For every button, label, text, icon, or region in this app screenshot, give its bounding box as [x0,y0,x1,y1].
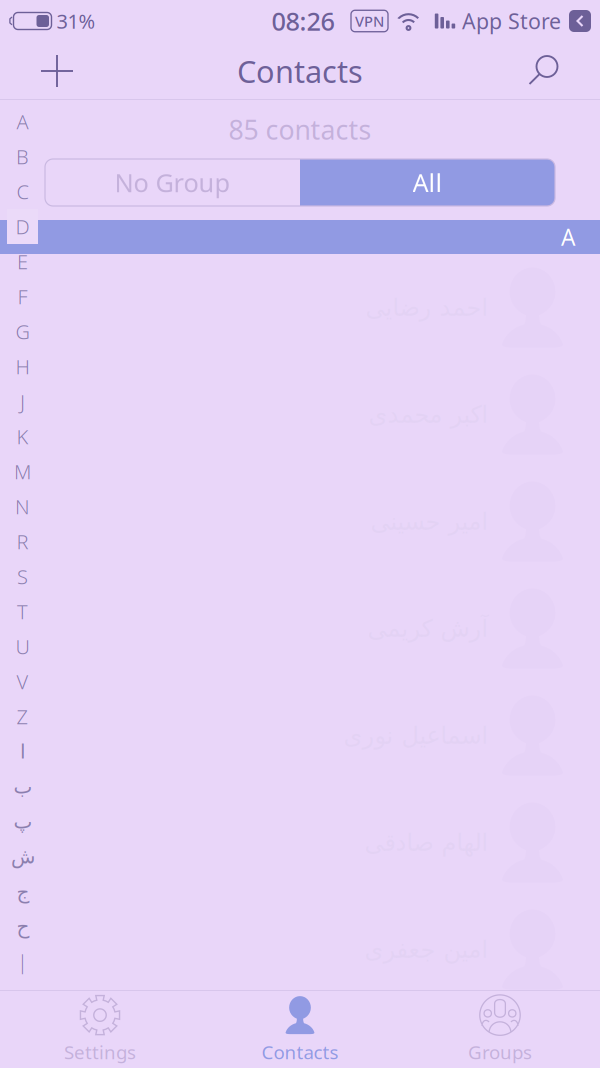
staticText: R [16,528,28,555]
staticText: ا [19,740,25,763]
staticText: App Store [462,7,561,35]
staticText: F [17,283,27,310]
staticText: 31% [56,8,95,34]
staticText: D [15,213,29,240]
button[interactable]: احمد رضایی [0,254,600,361]
staticText: B [16,143,29,170]
staticText: ج [16,880,29,903]
button[interactable]: Alphabet index [7,104,38,979]
button[interactable]: امیر حسینی [0,468,600,575]
staticText: 08:26 [271,4,334,38]
staticText: H [15,353,29,380]
staticText: K [16,423,28,450]
staticText: ش [10,845,34,868]
button[interactable]: No Group [45,159,300,206]
staticText: N [15,493,30,520]
staticText: M [14,458,31,485]
staticText: J [20,388,25,415]
staticText: A [561,222,575,252]
button[interactable]: اکبر محمدی [0,361,600,468]
staticText: A [16,108,28,135]
button[interactable]: Contacts [200,990,400,1068]
staticText: ح [16,915,29,938]
staticText: All [412,166,442,199]
staticText: Settings [64,1040,136,1064]
staticText: | [17,948,28,975]
staticText: S [17,563,28,590]
button[interactable]: Groups [400,990,600,1068]
staticText: ب [13,775,32,798]
staticText: Contacts [237,51,363,91]
staticText: T [17,598,28,625]
button[interactable]: امین جعفری [0,896,600,1003]
staticText: C [16,178,28,205]
button[interactable]: Add contact [27,42,87,100]
staticText: V [16,668,28,695]
button[interactable]: آرش کریمی [0,575,600,682]
staticText: U [15,633,29,660]
staticText: No Group [114,166,230,199]
staticText: Groups [468,1040,532,1064]
button[interactable]: اسماعیل نوری [0,682,600,789]
staticText: 85 contacts [228,112,371,147]
staticText: G [15,318,29,345]
button[interactable]: الهام صادقی [0,789,600,896]
staticText: E [17,248,28,275]
staticText: Contacts [261,1040,338,1064]
button[interactable]: Settings [0,990,200,1068]
staticText: پ [13,810,32,833]
button[interactable]: All [300,159,555,206]
button[interactable]: Search [513,42,573,100]
staticText: Z [16,703,28,730]
staticText: VPN [355,11,384,31]
